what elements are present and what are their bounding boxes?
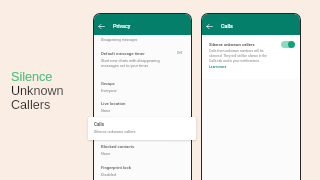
staticText: Everyone [101, 88, 117, 93]
staticText: Unknown [11, 84, 64, 98]
staticText: Fingerprint lock [101, 165, 132, 170]
staticText: Calls from unknown numbers will be silen… [209, 49, 268, 63]
button[interactable]: Blocked contacts [94, 144, 191, 156]
staticText: Start new chats with disappearing messag… [101, 58, 160, 68]
staticText: None [101, 151, 111, 156]
staticText: Calls [94, 122, 105, 127]
staticText: Disappearing messages [101, 38, 138, 42]
button[interactable]: Fingerprint lock [94, 165, 191, 177]
button[interactable]: Default message timer [94, 51, 191, 68]
other: Back [98, 23, 105, 30]
staticText: Blocked contacts [101, 144, 135, 149]
button[interactable]: Silence unknown callers toggle [281, 41, 295, 48]
staticText: Groups [101, 81, 115, 86]
staticText: Live location [101, 101, 126, 106]
staticText: Silence unknown callers [94, 129, 136, 134]
button[interactable]: Groups [94, 81, 191, 93]
staticText: Privacy [113, 23, 131, 29]
staticText: Off [177, 51, 182, 55]
staticText: Silence [11, 70, 53, 84]
staticText: Silence unknown callers [209, 42, 255, 47]
staticText: Calls [221, 23, 233, 29]
other: Back [206, 23, 213, 30]
staticText: Default message timer [101, 51, 145, 56]
staticText: None [101, 108, 111, 113]
button[interactable]: Live location [94, 101, 191, 113]
button[interactable]: Learn more [209, 65, 227, 69]
staticText: Callers [11, 98, 51, 112]
staticText: Disabled [101, 172, 117, 177]
button[interactable]: Calls [88, 117, 196, 140]
